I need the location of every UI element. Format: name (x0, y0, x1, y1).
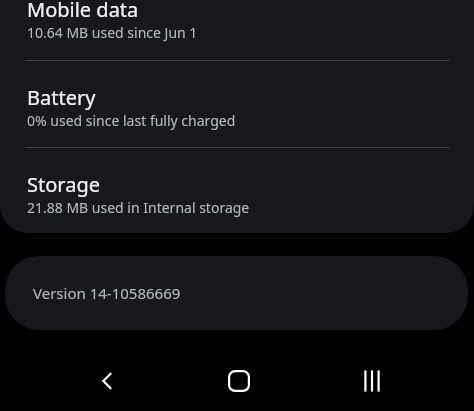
staticText: Battery (27, 84, 96, 111)
staticText: 10.64 MB used since Jun 1 (27, 23, 198, 42)
button[interactable]: Storage (0, 148, 474, 233)
button[interactable]: Back (78, 351, 138, 411)
staticText: 0% used since last fully charged (27, 111, 236, 130)
staticText: Mobile data (27, 0, 139, 23)
staticText: Storage (27, 171, 100, 198)
button[interactable]: Battery (0, 61, 474, 147)
staticText: 21.88 MB used in Internal storage (27, 198, 250, 217)
button[interactable]: Home (209, 351, 269, 411)
button[interactable]: Recents (342, 351, 402, 411)
button[interactable]: Mobile data (0, 0, 474, 60)
staticText: Version 14-10586669 (33, 283, 181, 303)
button[interactable]: Version 14-10586669 (5, 256, 468, 330)
